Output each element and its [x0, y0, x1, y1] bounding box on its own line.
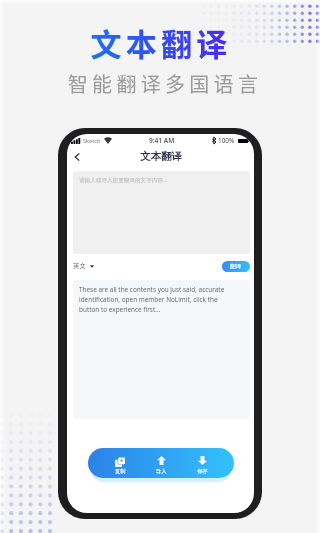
- staticText: 100%: [218, 136, 235, 145]
- staticText: 智能翻译多国语言: [5, 69, 320, 98]
- staticText: 文本翻译: [140, 150, 182, 163]
- button[interactable]: Back: [70, 150, 84, 164]
- button[interactable]: 翻译: [222, 261, 250, 272]
- staticText: 请输入或导入您要翻译的文字内容...: [79, 176, 168, 184]
- button[interactable]: 复制: [100, 448, 140, 478]
- button[interactable]: 保存: [182, 448, 222, 478]
- staticText: Sketch: [83, 137, 101, 145]
- staticText: 英文: [73, 262, 86, 270]
- staticText: 保存: [197, 468, 208, 475]
- staticText: 文本翻译: [1, 20, 320, 65]
- button[interactable]: 英文: [73, 262, 96, 270]
- staticText: 9:41 AM: [149, 136, 175, 145]
- staticText: These are all the contents you just said…: [79, 285, 232, 314]
- button[interactable]: 导入: [141, 448, 181, 478]
- staticText: 导入: [156, 468, 167, 475]
- staticText: 复制: [115, 468, 126, 475]
- staticText: 翻译: [230, 263, 242, 270]
